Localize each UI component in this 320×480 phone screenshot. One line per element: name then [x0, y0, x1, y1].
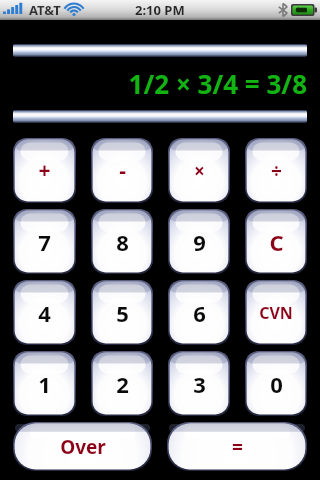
staticText: CVN: [259, 302, 293, 324]
staticText: C: [269, 227, 284, 257]
staticText: 8: [116, 227, 129, 257]
button[interactable]: 3: [168, 351, 230, 416]
staticText: 3: [193, 369, 206, 399]
staticText: ÷: [271, 158, 282, 184]
button[interactable]: 6: [168, 280, 230, 345]
button[interactable]: Add: [13, 138, 76, 203]
staticText: 0: [270, 369, 283, 399]
button[interactable]: 5: [91, 280, 153, 345]
staticText: +: [38, 156, 51, 185]
button[interactable]: Subtract: [91, 138, 153, 203]
staticText: =: [232, 434, 243, 460]
staticText: AT&T: [29, 1, 61, 19]
staticText: 2:10 PM: [135, 1, 185, 19]
staticText: -: [119, 156, 126, 185]
button[interactable]: 0: [245, 351, 307, 416]
button[interactable]: C: [245, 209, 307, 274]
button[interactable]: 2: [91, 351, 153, 416]
staticText: 1/2 × 3/4 = 3/8: [128, 66, 307, 101]
staticText: 4: [38, 298, 51, 328]
staticText: Over: [60, 434, 106, 460]
button[interactable]: 8: [91, 209, 153, 274]
button[interactable]: 7: [13, 209, 76, 274]
staticText: 7: [38, 227, 51, 257]
button[interactable]: CVN: [245, 280, 307, 345]
staticText: 6: [193, 298, 206, 328]
button[interactable]: 9: [168, 209, 230, 274]
button[interactable]: Divide: [245, 138, 307, 203]
button[interactable]: 4: [13, 280, 76, 345]
button[interactable]: Equals: [167, 422, 307, 471]
button[interactable]: 1: [13, 351, 76, 416]
staticText: 9: [193, 227, 206, 257]
staticText: 5: [116, 298, 129, 328]
staticText: 1: [38, 369, 51, 399]
staticText: 2: [116, 369, 129, 399]
staticText: ×: [194, 158, 205, 184]
button[interactable]: Multiply: [168, 138, 230, 203]
button[interactable]: Over: [13, 422, 152, 471]
